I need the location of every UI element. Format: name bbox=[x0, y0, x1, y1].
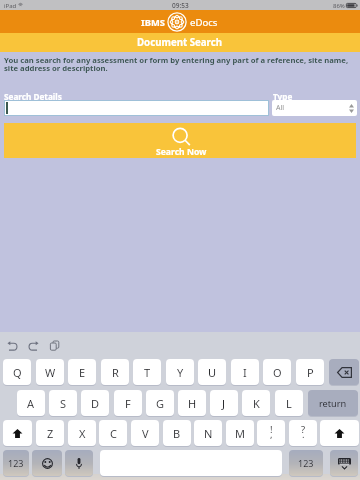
button[interactable]: M bbox=[226, 420, 254, 446]
staticText: J bbox=[222, 396, 226, 411]
staticText: iPad bbox=[4, 2, 17, 10]
button[interactable]: Shift bbox=[3, 420, 32, 446]
button[interactable]: L bbox=[275, 390, 303, 416]
staticText: Z bbox=[47, 426, 54, 441]
button[interactable]: H bbox=[178, 390, 206, 416]
button[interactable]: P bbox=[296, 359, 324, 385]
staticText: C bbox=[110, 426, 117, 441]
button[interactable]: Emoji bbox=[32, 450, 62, 476]
button[interactable]: Numbers bbox=[289, 450, 323, 476]
staticText: O bbox=[273, 365, 282, 380]
staticText: E bbox=[79, 365, 86, 380]
button[interactable]: X bbox=[68, 420, 96, 446]
staticText: R bbox=[112, 365, 119, 380]
button[interactable]: W bbox=[36, 359, 64, 385]
button[interactable]: F bbox=[114, 390, 142, 416]
staticText: Document Search bbox=[137, 36, 223, 49]
staticText: F bbox=[125, 396, 131, 411]
button[interactable]: K bbox=[242, 390, 270, 416]
button[interactable]: C bbox=[99, 420, 127, 446]
button[interactable]: ? bbox=[289, 420, 317, 446]
button[interactable]: E bbox=[68, 359, 96, 385]
staticText: T bbox=[144, 365, 151, 380]
staticText: Y bbox=[177, 365, 184, 380]
staticText: B bbox=[173, 426, 181, 441]
button[interactable]: ! bbox=[257, 420, 285, 446]
staticText: 09:53 bbox=[172, 1, 189, 10]
staticText: 86% bbox=[333, 2, 345, 10]
staticText: Q bbox=[13, 365, 22, 380]
staticText: X bbox=[79, 426, 86, 441]
staticText: A bbox=[27, 396, 35, 411]
staticText: M bbox=[235, 426, 245, 441]
staticText: Search Details bbox=[4, 91, 62, 102]
staticText: 123 bbox=[298, 457, 314, 469]
button[interactable]: Numbers bbox=[3, 450, 29, 476]
button[interactable]: Paste bbox=[46, 337, 63, 354]
staticText: You can search for any assessment or for… bbox=[4, 55, 354, 73]
staticText: IBMS bbox=[141, 16, 165, 29]
button[interactable]: Shift bbox=[320, 420, 359, 446]
button[interactable] bbox=[4, 100, 269, 116]
button[interactable]: U bbox=[198, 359, 226, 385]
staticText: . bbox=[302, 428, 305, 441]
button[interactable]: Q bbox=[3, 359, 31, 385]
button[interactable]: Y bbox=[166, 359, 194, 385]
staticText: eDocs bbox=[190, 16, 218, 29]
staticText: G bbox=[156, 396, 165, 411]
button[interactable]: return bbox=[308, 390, 358, 416]
button[interactable]: S bbox=[49, 390, 77, 416]
button[interactable]: Z bbox=[36, 420, 64, 446]
staticText: V bbox=[142, 426, 149, 441]
button[interactable]: T bbox=[133, 359, 161, 385]
staticText: I bbox=[243, 365, 247, 380]
button[interactable]: Document Search bbox=[0, 33, 360, 52]
button[interactable]: Search Now bbox=[4, 123, 356, 158]
button[interactable]: R bbox=[101, 359, 129, 385]
staticText: P bbox=[307, 365, 314, 380]
button[interactable]: I bbox=[231, 359, 259, 385]
staticText: return bbox=[319, 397, 347, 410]
button[interactable]: Dictate bbox=[65, 450, 93, 476]
staticText: N bbox=[204, 426, 213, 441]
button[interactable]: Redo bbox=[25, 337, 42, 354]
button[interactable]: Backspace bbox=[329, 359, 359, 385]
staticText: ! bbox=[270, 423, 273, 436]
button[interactable]: Undo bbox=[4, 337, 21, 354]
button[interactable]: A bbox=[17, 390, 45, 416]
staticText: Search Now bbox=[156, 146, 207, 158]
staticText: L bbox=[286, 396, 292, 411]
button[interactable]: O bbox=[263, 359, 291, 385]
staticText: U bbox=[208, 365, 217, 380]
staticText: W bbox=[45, 365, 56, 380]
staticText: H bbox=[188, 396, 197, 411]
button[interactable]: J bbox=[210, 390, 238, 416]
staticText: , bbox=[270, 428, 273, 441]
staticText: K bbox=[253, 396, 260, 411]
button[interactable]: N bbox=[194, 420, 222, 446]
staticText: D bbox=[91, 396, 100, 411]
button[interactable]: All bbox=[272, 100, 357, 116]
staticText: Type bbox=[273, 91, 293, 102]
button[interactable]: V bbox=[131, 420, 159, 446]
button[interactable]: G bbox=[146, 390, 174, 416]
button[interactable]: D bbox=[81, 390, 109, 416]
button[interactable]: Hide keyboard bbox=[330, 450, 358, 476]
staticText: All bbox=[276, 103, 285, 113]
staticText: 123 bbox=[8, 457, 24, 469]
button[interactable]: B bbox=[163, 420, 191, 446]
staticText: ? bbox=[301, 423, 306, 436]
staticText: S bbox=[60, 396, 67, 411]
